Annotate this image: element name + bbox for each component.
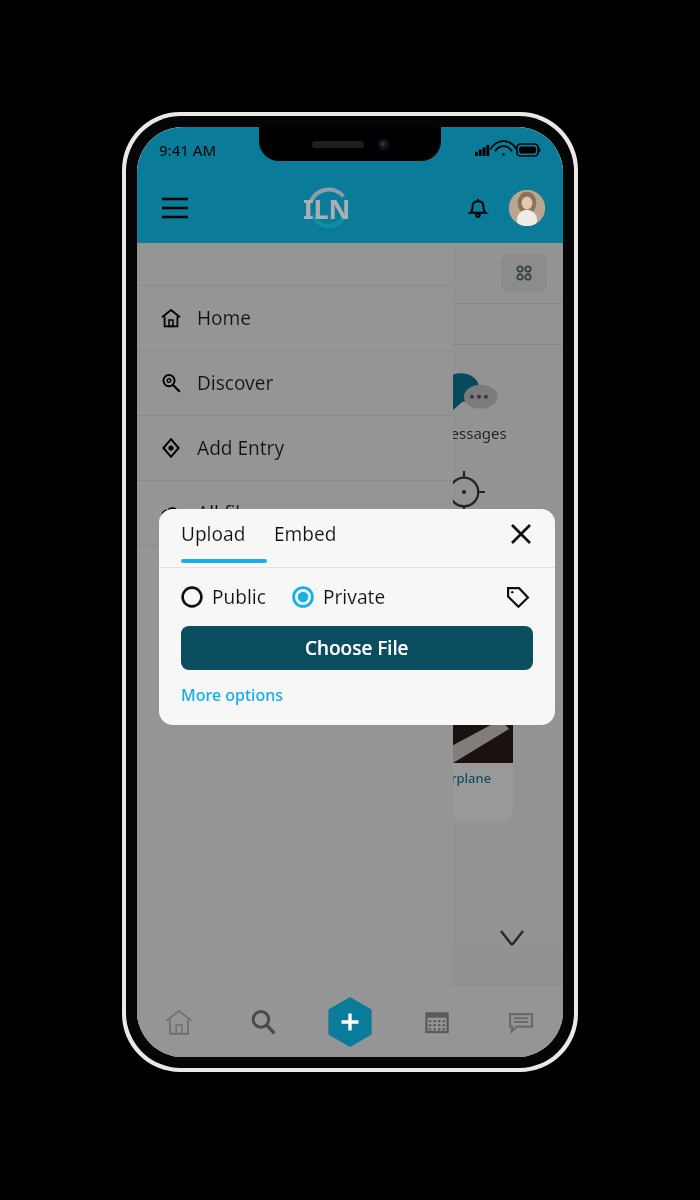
button[interactable]: Public <box>181 584 266 610</box>
staticText: Home <box>197 305 252 331</box>
button[interactable]: Calendar <box>411 996 463 1048</box>
button[interactable]: Notifications <box>459 189 497 227</box>
button[interactable]: Home <box>153 996 205 1048</box>
staticText: More options <box>181 684 283 706</box>
button[interactable]: Private <box>292 584 386 610</box>
button[interactable]: Add Entry <box>137 416 453 480</box>
button[interactable]: Messages <box>495 996 547 1048</box>
staticText: Private <box>323 584 386 610</box>
staticText: All files <box>197 500 261 526</box>
button[interactable]: Profile <box>509 190 545 226</box>
button[interactable]: Upload <box>181 521 246 547</box>
staticText: Embed <box>274 521 337 547</box>
button[interactable]: Tags <box>503 582 533 612</box>
button[interactable]: Close <box>505 518 537 550</box>
staticText: Airplane <box>439 769 492 787</box>
button[interactable]: Upload to cloud <box>403 998 433 1028</box>
button[interactable]: All files <box>137 481 453 545</box>
staticText: Choose File <box>305 635 409 661</box>
button[interactable]: Discover <box>137 351 453 415</box>
staticText: Messages <box>437 423 507 443</box>
staticText: 9:41 AM <box>159 140 217 160</box>
button[interactable]: Home <box>137 286 453 350</box>
staticText: Add Entry <box>197 435 285 461</box>
staticText: Storage <box>157 1000 227 1026</box>
button[interactable]: More options <box>181 684 283 706</box>
button[interactable]: Grid view <box>501 254 547 292</box>
staticText: ILN <box>303 190 351 227</box>
button[interactable]: Search <box>237 996 289 1048</box>
button[interactable]: Add <box>321 993 379 1051</box>
staticText: Discover <box>197 370 274 396</box>
staticText: Public <box>212 584 266 610</box>
button[interactable]: Menu <box>155 188 195 228</box>
staticText: Upload <box>181 521 246 547</box>
button[interactable]: Embed <box>274 521 337 547</box>
button[interactable]: Choose File <box>181 626 533 670</box>
